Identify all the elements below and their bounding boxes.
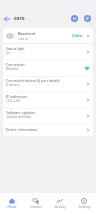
staticText: On	[6, 51, 11, 55]
staticText: eero	[14, 15, 25, 21]
staticText: Activity	[55, 205, 66, 209]
button[interactable]: Pause internet	[68, 12, 81, 25]
staticText: Connection	[6, 62, 25, 67]
staticText: Wireless	[6, 67, 19, 71]
button[interactable]: Activity	[48, 193, 72, 214]
button[interactable]: Connection	[3, 60, 93, 76]
button[interactable]: Support	[81, 12, 94, 25]
button[interactable]: Devices	[24, 193, 48, 214]
staticText: Status light	[6, 46, 25, 51]
staticText: Device information	[6, 127, 38, 132]
staticText: Devices	[30, 205, 42, 209]
button[interactable]: Connected devices & port details	[3, 76, 93, 92]
button[interactable]: IP addresses	[3, 92, 93, 108]
button[interactable]: Settings	[72, 193, 96, 214]
staticText: eero 6+	[18, 37, 29, 41]
staticText: 0 devices	[6, 83, 20, 87]
button[interactable]: Software updates	[3, 108, 93, 124]
button[interactable]: Basement	[3, 28, 93, 43]
staticText: IP addresses	[6, 94, 27, 99]
staticText: Settings	[78, 205, 91, 209]
button[interactable]: Home	[0, 193, 24, 214]
staticText: Online	[72, 33, 83, 38]
staticText: Home	[7, 205, 17, 209]
button[interactable]: Status light	[3, 44, 93, 60]
staticText: Basement	[18, 31, 36, 36]
staticText: Software updates	[6, 110, 35, 115]
button[interactable]: Device information	[3, 124, 93, 136]
staticText: 10.0.4.48	[6, 99, 20, 103]
staticText: Connected devices & port details	[6, 78, 60, 83]
button[interactable]: Back	[0, 12, 13, 25]
staticText: Update available	[6, 115, 32, 119]
